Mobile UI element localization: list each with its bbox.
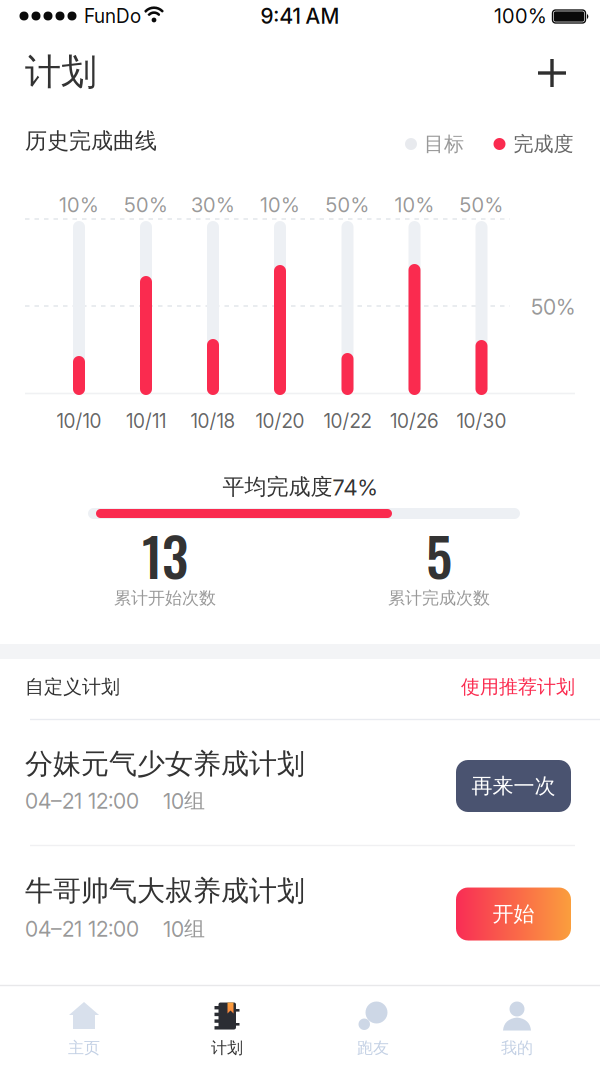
staticText: 50% bbox=[325, 193, 369, 217]
staticText: 计划 bbox=[25, 50, 97, 94]
staticText: 主页 bbox=[68, 1038, 100, 1058]
staticText: 自定义计划 bbox=[25, 675, 120, 699]
staticText: 9:41 AM bbox=[260, 4, 339, 28]
staticText: 累计开始次数 bbox=[114, 588, 216, 608]
staticText: 100% bbox=[494, 4, 547, 28]
staticText: 13 bbox=[142, 516, 188, 594]
staticText: 10/22 bbox=[323, 410, 371, 432]
staticText: 我的 bbox=[501, 1038, 533, 1058]
staticText: 50% bbox=[531, 295, 575, 319]
staticText: FunDo bbox=[84, 5, 141, 27]
staticText: 10/10 bbox=[56, 410, 101, 432]
button[interactable]: 计划 bbox=[162, 988, 292, 1064]
staticText: 历史完成曲线 bbox=[25, 127, 157, 154]
button[interactable]: 再来一次 bbox=[456, 760, 571, 812]
staticText: 50% bbox=[124, 193, 168, 217]
button[interactable]: 主页 bbox=[19, 988, 149, 1064]
staticText: 04–21 12:00 bbox=[25, 789, 139, 813]
staticText: 10/20 bbox=[255, 410, 304, 432]
staticText: 10% bbox=[260, 193, 300, 217]
staticText: 开始 bbox=[492, 901, 534, 927]
button[interactable]: 我的 bbox=[452, 988, 582, 1064]
button[interactable]: 分妹元气少女养成计划 bbox=[0, 730, 600, 840]
staticText: 10/11 bbox=[126, 410, 166, 432]
button[interactable]: 牛哥帅气大叔养成计划 bbox=[0, 856, 600, 966]
staticText: 目标 bbox=[424, 132, 464, 156]
staticText: 30% bbox=[191, 193, 235, 217]
staticText: 50% bbox=[459, 193, 503, 217]
staticText: 累计完成次数 bbox=[388, 588, 490, 608]
button[interactable]: 跑友 bbox=[308, 988, 438, 1064]
staticText: 平均完成度74% bbox=[222, 473, 377, 500]
staticText: 牛哥帅气大叔养成计划 bbox=[25, 874, 305, 908]
button[interactable]: 使用推荐计划 bbox=[461, 675, 575, 699]
staticText: 计划 bbox=[211, 1038, 243, 1058]
staticText: 10组 bbox=[163, 916, 205, 942]
staticText: 完成度 bbox=[513, 132, 573, 156]
staticText: 5 bbox=[426, 516, 452, 594]
staticText: 分妹元气少女养成计划 bbox=[25, 747, 305, 781]
staticText: 10/18 bbox=[190, 410, 235, 432]
staticText: 10/30 bbox=[456, 410, 506, 432]
staticText: 10/26 bbox=[390, 410, 439, 432]
staticText: 10% bbox=[59, 193, 99, 217]
staticText: 10组 bbox=[163, 788, 205, 814]
staticText: 10% bbox=[394, 193, 434, 217]
button[interactable]: 添加计划 bbox=[534, 55, 570, 91]
staticText: 再来一次 bbox=[471, 773, 555, 799]
button[interactable]: 开始 bbox=[456, 887, 571, 940]
staticText: 跑友 bbox=[357, 1038, 389, 1058]
staticText: 使用推荐计划 bbox=[461, 675, 575, 699]
staticText: 04–21 12:00 bbox=[25, 917, 139, 941]
